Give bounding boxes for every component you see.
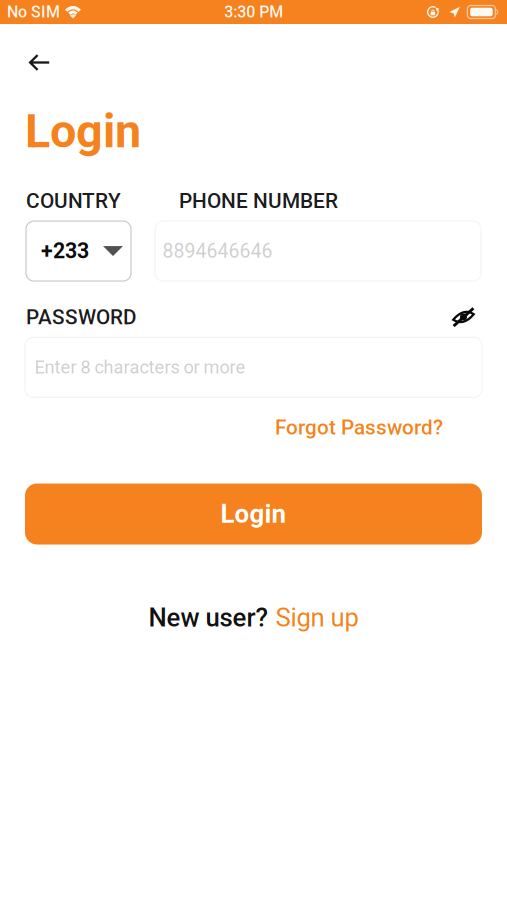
staticText: Login bbox=[220, 499, 286, 529]
staticText: Login bbox=[25, 104, 141, 159]
staticText: PASSWORD bbox=[26, 305, 136, 329]
staticText: +233 bbox=[41, 239, 89, 264]
staticText: Enter 8 characters or more bbox=[34, 357, 245, 378]
staticText: COUNTRY bbox=[26, 189, 121, 213]
staticText: New user? bbox=[148, 602, 268, 633]
button[interactable]: Show password bbox=[452, 307, 475, 327]
staticText: PHONE NUMBER bbox=[179, 189, 338, 213]
button[interactable]: Login bbox=[25, 483, 482, 544]
staticText: 8894646646 bbox=[162, 240, 272, 262]
staticText: Forgot Password? bbox=[275, 415, 443, 439]
button[interactable]: +233 bbox=[26, 221, 131, 281]
staticText: No SIM bbox=[7, 3, 60, 21]
button[interactable]: Sign up bbox=[275, 602, 358, 633]
staticText: 3:30 PM bbox=[224, 3, 283, 21]
button[interactable]: Back bbox=[13, 41, 66, 84]
button[interactable]: Forgot Password? bbox=[275, 415, 443, 439]
staticText: Sign up bbox=[275, 602, 358, 633]
